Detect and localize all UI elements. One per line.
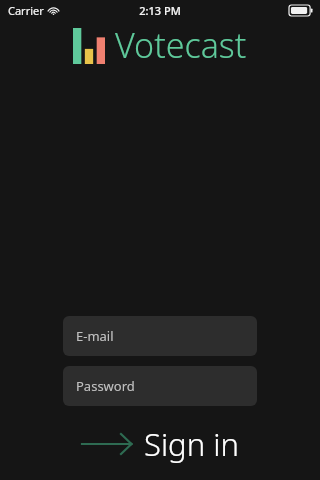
other: Sign in [82,433,132,455]
staticText: Carrier [8,3,44,18]
staticText: Password [76,377,135,395]
staticText: E-mail [76,327,114,345]
staticText: Sign in [144,423,239,465]
button[interactable]: E-mail [63,316,257,356]
staticText: Votecast [115,22,247,68]
button[interactable]: Password [63,366,257,406]
button[interactable]: Sign in [63,420,257,468]
staticText: 2:13 PM [139,3,181,18]
